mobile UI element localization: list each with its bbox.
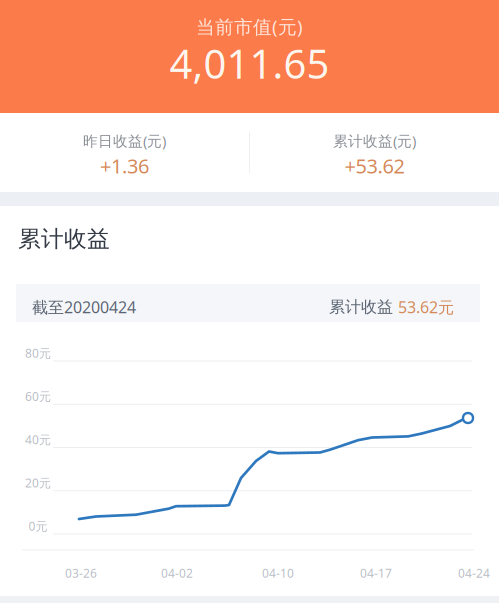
staticText: 4,011.65 xyxy=(169,37,329,90)
staticText: 截至20200424 xyxy=(32,296,136,318)
staticText: 累计收益 xyxy=(18,225,110,253)
staticText: 0元 xyxy=(28,518,47,534)
staticText: 04-24 xyxy=(458,565,490,581)
staticText: 04-10 xyxy=(262,565,294,581)
staticText: 昨日收益(元) xyxy=(83,131,166,150)
staticText: 03-26 xyxy=(65,565,97,581)
button[interactable]: 累计收益(元) xyxy=(250,113,499,192)
staticText: 累计收益 xyxy=(329,297,398,317)
staticText: 当前市值(元) xyxy=(196,14,303,39)
staticText: 累计收益(元) xyxy=(333,131,416,150)
staticText: 04-02 xyxy=(161,565,193,581)
staticText: +1.36 xyxy=(100,152,149,179)
staticText: 40元 xyxy=(25,431,51,447)
staticText: 80元 xyxy=(25,345,51,361)
staticText: +53.62 xyxy=(344,152,404,179)
staticText: 60元 xyxy=(25,388,51,404)
staticText: 04-17 xyxy=(360,565,392,581)
staticText: 53.62元 xyxy=(398,296,454,318)
button[interactable]: 昨日收益(元) xyxy=(0,113,249,192)
staticText: 20元 xyxy=(25,475,51,491)
